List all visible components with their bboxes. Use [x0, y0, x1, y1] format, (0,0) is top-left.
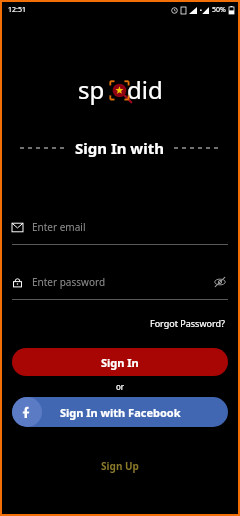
staticText: 50% — [212, 5, 226, 15]
button[interactable]: Enter password — [12, 271, 228, 300]
staticText: Sign Up — [101, 459, 139, 473]
staticText: Forgot Password? — [150, 317, 225, 329]
button[interactable]: Sign In — [12, 348, 228, 376]
staticText: Sign In with Facebook — [60, 405, 181, 420]
staticText: Sign In — [101, 355, 139, 370]
staticText: did — [127, 73, 163, 106]
staticText: Sign In with — [75, 138, 164, 158]
button[interactable]: Enter email — [12, 216, 228, 245]
button[interactable]: Sign Up — [97, 455, 143, 477]
button[interactable]: Forgot Password? — [147, 314, 228, 332]
button[interactable]: Sign In with Facebook — [12, 397, 228, 427]
button[interactable]: Show password — [212, 274, 228, 290]
staticText: Enter email — [32, 220, 86, 234]
staticText: sp — [78, 73, 105, 106]
staticText: 12:51 — [8, 5, 26, 15]
staticText: or — [116, 381, 125, 392]
staticText: Enter password — [32, 275, 106, 289]
